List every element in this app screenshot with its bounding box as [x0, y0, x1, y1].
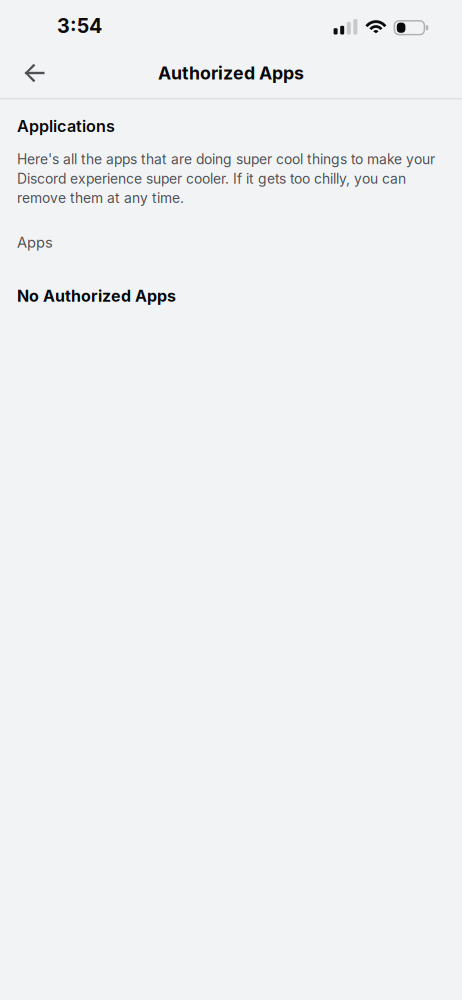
staticText: No Authorized Apps [17, 286, 176, 306]
button[interactable]: Back [0, 49, 65, 97]
staticText: Authorized Apps [158, 62, 304, 84]
staticText: Here's all the apps that are doing super… [17, 151, 435, 206]
staticText: Apps [17, 233, 53, 251]
staticText: Applications [17, 116, 115, 136]
staticText: 3:54 [57, 14, 102, 38]
